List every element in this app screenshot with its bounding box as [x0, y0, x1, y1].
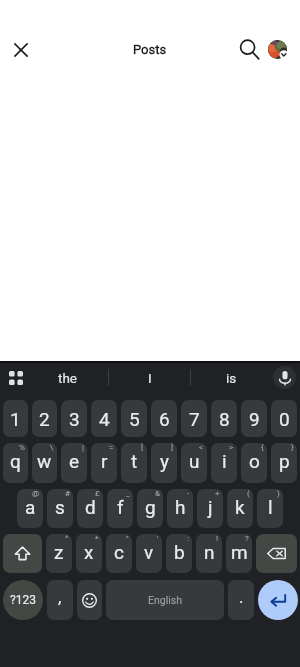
button[interactable]: r — [91, 443, 117, 483]
staticText: p — [279, 450, 290, 472]
staticText: c — [114, 541, 124, 563]
staticText: z — [54, 541, 64, 563]
button[interactable]: n — [196, 534, 222, 573]
button[interactable]: 7 — [181, 400, 207, 437]
button[interactable]: d — [77, 489, 103, 528]
button[interactable]: a — [17, 489, 43, 528]
button[interactable]: 5 — [121, 400, 147, 437]
staticText: ? — [245, 534, 249, 543]
staticText: - — [187, 489, 190, 498]
button[interactable]: i — [211, 443, 237, 483]
button[interactable]: 8 — [211, 400, 237, 437]
button[interactable]: Shift — [3, 534, 42, 573]
staticText: v — [144, 541, 154, 563]
button[interactable]: ?123 — [3, 580, 43, 620]
staticText: % — [19, 443, 25, 452]
staticText: Posts — [133, 42, 167, 57]
button[interactable]: h — [167, 489, 193, 528]
button[interactable]: t — [121, 443, 147, 483]
button[interactable]: z — [46, 534, 72, 573]
staticText: = — [109, 443, 114, 452]
staticText: 2 — [39, 408, 50, 430]
button[interactable]: Account — [263, 35, 291, 63]
button[interactable]: 2 — [32, 400, 57, 437]
staticText: i — [222, 450, 227, 472]
staticText: [ — [141, 443, 144, 452]
staticText: k — [235, 496, 245, 518]
button[interactable]: Close — [6, 35, 35, 64]
button[interactable]: Backspace — [256, 534, 297, 573]
staticText: & — [155, 489, 160, 498]
button[interactable]: 0 — [271, 400, 297, 437]
staticText: 4 — [99, 408, 110, 430]
staticText: g — [145, 496, 156, 518]
button[interactable]: Search — [235, 35, 264, 64]
staticText: 9 — [249, 408, 260, 430]
staticText: # — [65, 489, 70, 498]
button[interactable]: p — [271, 443, 297, 483]
button[interactable]: , — [47, 580, 73, 620]
button[interactable]: x — [76, 534, 102, 573]
button[interactable]: I — [109, 363, 190, 392]
button[interactable]: u — [181, 443, 207, 483]
button[interactable]: the — [27, 363, 108, 392]
staticText: , — [58, 587, 62, 607]
button[interactable]: s — [47, 489, 73, 528]
button[interactable]: . — [228, 580, 254, 620]
button[interactable]: Enter — [258, 580, 298, 620]
button[interactable]: 3 — [61, 400, 87, 437]
button[interactable]: 4 — [91, 400, 117, 437]
staticText: English — [148, 594, 182, 606]
button[interactable]: f — [107, 489, 133, 528]
staticText: \ — [50, 443, 54, 452]
button[interactable]: w — [32, 443, 57, 483]
staticText: 0 — [279, 408, 290, 430]
button[interactable]: l — [257, 489, 283, 528]
button[interactable]: y — [151, 443, 177, 483]
staticText: u — [189, 450, 200, 472]
staticText: o — [249, 450, 260, 472]
staticText: h — [175, 496, 186, 518]
staticText: + — [215, 489, 220, 498]
staticText: e — [69, 450, 80, 472]
staticText: f — [117, 496, 124, 518]
staticText: " — [126, 534, 129, 543]
staticText: : — [187, 534, 189, 543]
button[interactable]: Apps — [3, 365, 29, 391]
button[interactable]: Emoji — [77, 580, 102, 620]
staticText: the — [58, 370, 78, 386]
button[interactable]: b — [166, 534, 192, 573]
staticText: < — [199, 443, 204, 452]
staticText: m — [231, 541, 248, 563]
button[interactable]: k — [227, 489, 253, 528]
button[interactable]: v — [136, 534, 162, 573]
button[interactable]: English — [106, 580, 224, 620]
button[interactable]: o — [241, 443, 267, 483]
button[interactable]: 9 — [241, 400, 267, 437]
staticText: b — [174, 541, 185, 563]
staticText: ) — [277, 489, 280, 498]
staticText: j — [208, 496, 213, 518]
staticText: s — [55, 496, 65, 518]
button[interactable]: q — [3, 443, 28, 483]
staticText: * — [95, 534, 99, 543]
button[interactable]: j — [197, 489, 223, 528]
button[interactable]: e — [61, 443, 87, 483]
staticText: _ — [126, 489, 130, 498]
button[interactable]: 6 — [151, 400, 177, 437]
staticText: 5 — [129, 408, 140, 430]
button[interactable]: is — [191, 363, 272, 392]
staticText: l — [268, 496, 273, 518]
staticText: y — [160, 450, 169, 472]
button[interactable]: Voice input — [273, 366, 296, 389]
button[interactable]: c — [106, 534, 132, 573]
button[interactable]: g — [137, 489, 163, 528]
staticText: > — [229, 443, 234, 452]
staticText: 7 — [189, 408, 200, 430]
button[interactable]: 1 — [3, 400, 28, 437]
staticText: 6 — [159, 408, 170, 430]
staticText: q — [10, 450, 21, 472]
button[interactable]: m — [226, 534, 252, 573]
staticText: I — [148, 370, 152, 386]
staticText: x — [84, 541, 94, 563]
